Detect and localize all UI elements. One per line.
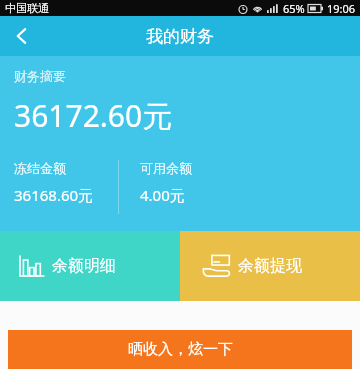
staticText: 4.00元 xyxy=(140,185,185,205)
staticText: 中国联通 xyxy=(5,1,49,15)
button[interactable]: Back xyxy=(0,16,44,56)
staticText: 冻结金额 xyxy=(14,160,66,176)
button[interactable]: 晒收入，炫一下 xyxy=(8,330,352,369)
staticText: 余额明细 xyxy=(52,256,116,276)
staticText: 36168.60元 xyxy=(14,185,94,205)
button[interactable]: 余额提现 xyxy=(180,231,360,301)
staticText: 晒收入，炫一下 xyxy=(128,340,233,359)
staticText: 65% xyxy=(283,1,305,16)
staticText: 余额提现 xyxy=(238,256,302,276)
staticText: 36172.60元 xyxy=(14,95,173,136)
staticText: 19:06 xyxy=(327,1,356,16)
staticText: 财务摘要 xyxy=(14,68,66,84)
staticText: 我的财务 xyxy=(146,26,214,47)
button[interactable]: 余额明细 xyxy=(0,231,180,301)
staticText: 可用余额 xyxy=(140,160,192,176)
